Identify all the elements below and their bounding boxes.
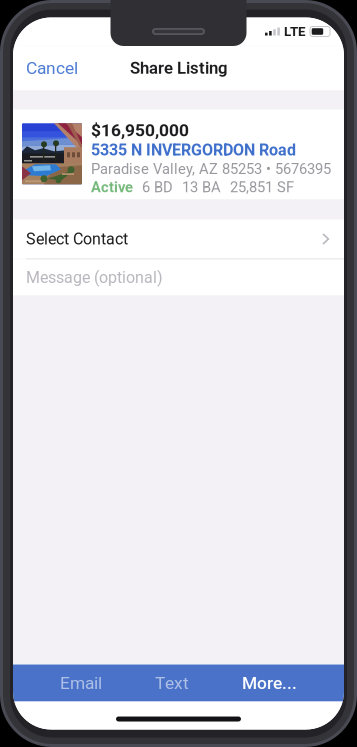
staticText: 5335 N INVERGORDON Road bbox=[91, 141, 296, 159]
button[interactable]: Cancel bbox=[13, 45, 92, 90]
staticText: Active bbox=[91, 178, 133, 196]
button[interactable]: Message (optional) bbox=[13, 259, 344, 295]
staticText: LTE bbox=[284, 24, 306, 39]
staticText: Share Listing bbox=[130, 58, 227, 78]
staticText: Cancel bbox=[26, 58, 78, 78]
button[interactable]: More... bbox=[236, 664, 303, 701]
button[interactable]: Select Contact bbox=[13, 219, 344, 258]
staticText: 6 BD bbox=[142, 178, 173, 196]
button[interactable]: Email bbox=[54, 664, 108, 701]
staticText: Text bbox=[155, 673, 189, 693]
staticText: More... bbox=[242, 673, 297, 693]
button[interactable]: Text bbox=[149, 664, 195, 701]
button[interactable]: $16,950,000 bbox=[13, 109, 344, 199]
staticText: Email bbox=[60, 673, 102, 693]
staticText: 25,851 SF bbox=[230, 178, 294, 196]
staticText: $16,950,000 bbox=[91, 120, 189, 141]
staticText: 13 BA bbox=[182, 178, 221, 196]
staticText: Paradise Valley, AZ 85253 • 5676395 bbox=[91, 160, 331, 177]
staticText: Message (optional) bbox=[26, 268, 163, 287]
staticText: Select Contact bbox=[26, 230, 128, 248]
